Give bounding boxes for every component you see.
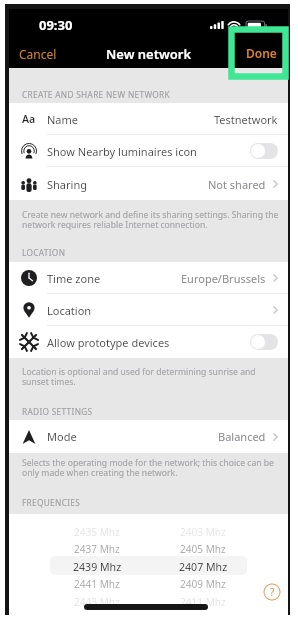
staticText: Not shared — [208, 177, 266, 192]
staticText: FREQUENCIES — [22, 497, 81, 508]
button[interactable]: Time zone — [9, 262, 288, 294]
staticText: Create new network and define its sharin… — [22, 209, 279, 230]
staticText: LOCATION — [22, 247, 66, 258]
staticText: Location is optional and used for determ… — [22, 366, 256, 387]
staticText: RADIO SETTINGS — [22, 406, 93, 417]
staticText: 2441 Mhz — [74, 577, 120, 591]
staticText: Location — [47, 303, 92, 318]
button[interactable]: 2443 Mhz — [47, 593, 147, 610]
staticText: 2405 Mhz — [180, 542, 226, 556]
button[interactable]: 2407 Mhz — [153, 558, 253, 575]
staticText: 09:30 — [39, 16, 73, 34]
staticText: Balanced — [218, 429, 266, 444]
staticText: Aa — [22, 112, 36, 126]
button[interactable]: 2435 Mhz — [47, 523, 147, 540]
button[interactable]: Help — [263, 583, 281, 601]
button[interactable]: 2403 Mhz — [153, 523, 253, 540]
button[interactable]: Toggle Show Nearby luminaires icon — [250, 143, 278, 159]
staticText: 2439 Mhz — [73, 560, 122, 574]
staticText: Selects the operating mode for the netwo… — [22, 457, 274, 478]
staticText: 2407 Mhz — [179, 560, 228, 574]
staticText: Time zone — [47, 271, 101, 286]
staticText: 2443 Mhz — [74, 595, 120, 609]
button[interactable]: Location — [9, 294, 288, 326]
staticText: 2411 Mhz — [180, 595, 226, 609]
button[interactable]: 2405 Mhz — [153, 540, 253, 557]
staticText: Allow prototype devices — [47, 335, 170, 350]
button[interactable]: Cancel — [9, 40, 67, 68]
button[interactable]: Mode — [9, 420, 288, 453]
button[interactable]: Allow prototype devices — [9, 326, 288, 358]
staticText: Europe/Brussels — [181, 271, 266, 286]
staticText: CREATE AND SHARE NEW NETWORK — [22, 89, 171, 100]
staticText: New network — [106, 45, 192, 63]
button[interactable]: 2441 Mhz — [47, 575, 147, 592]
button[interactable]: 2409 Mhz — [153, 575, 253, 592]
button[interactable]: Aa — [9, 103, 288, 135]
button[interactable]: 2437 Mhz — [47, 540, 147, 557]
staticText: Mode — [47, 429, 77, 444]
staticText: 2435 Mhz — [74, 525, 120, 539]
button[interactable]: Sharing — [9, 168, 288, 200]
staticText: Done — [246, 45, 277, 61]
staticText: Cancel — [19, 46, 57, 62]
staticText: Testnetwork — [214, 112, 278, 127]
button[interactable]: Toggle Allow prototype devices — [250, 334, 278, 350]
button[interactable]: Done — [234, 39, 288, 67]
staticText: Show Nearby luminaires icon — [47, 144, 197, 159]
staticText: Sharing — [47, 177, 87, 192]
staticText: Name — [47, 112, 79, 127]
staticText: 2403 Mhz — [180, 525, 226, 539]
staticText: 2409 Mhz — [180, 577, 226, 591]
button[interactable]: 2411 Mhz — [153, 593, 253, 610]
staticText: ? — [270, 585, 275, 599]
button[interactable]: 2439 Mhz — [47, 558, 147, 575]
button[interactable]: Show Nearby luminaires icon — [9, 135, 288, 167]
staticText: 2437 Mhz — [74, 542, 120, 556]
